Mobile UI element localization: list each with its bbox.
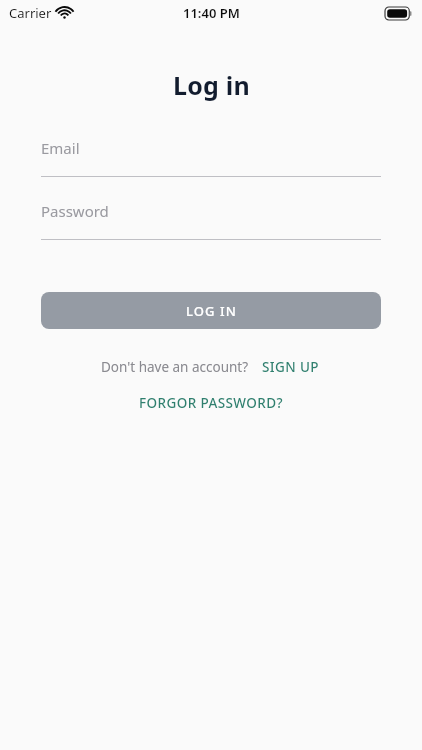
staticText: Don't have an account? xyxy=(101,358,249,376)
button[interactable]: SIGN UP xyxy=(260,356,322,378)
staticText: Password xyxy=(41,201,109,221)
button[interactable]: Password xyxy=(41,197,381,240)
button[interactable]: LOG IN xyxy=(41,292,381,329)
staticText: Email xyxy=(41,138,80,158)
staticText: FORGOR PASSWORD? xyxy=(139,394,283,412)
staticText: SIGN UP xyxy=(262,358,320,376)
staticText: Carrier xyxy=(9,4,52,22)
staticText: 11:40 PM xyxy=(183,4,240,22)
button[interactable]: FORGOR PASSWORD? xyxy=(133,391,289,415)
button[interactable]: Email xyxy=(41,134,381,177)
staticText: Log in xyxy=(173,68,250,102)
staticText: LOG IN xyxy=(186,302,237,320)
